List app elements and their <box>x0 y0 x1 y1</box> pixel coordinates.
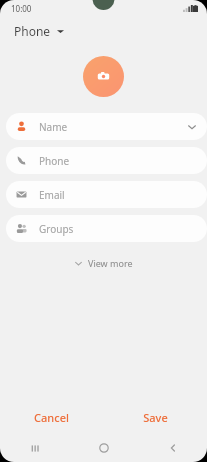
button[interactable]: Recents <box>0 434 69 462</box>
staticText: Save <box>143 410 168 425</box>
button[interactable]: View more <box>66 253 141 273</box>
button[interactable]: Save <box>103 410 207 425</box>
staticText: Groups <box>39 222 74 236</box>
staticText: 10:00 <box>11 3 32 14</box>
button[interactable]: Home <box>69 434 138 462</box>
button[interactable]: Cancel <box>0 410 103 425</box>
button[interactable]: Name <box>6 113 207 140</box>
button[interactable]: Back <box>138 434 207 462</box>
staticText: Name <box>39 120 68 134</box>
staticText: View more <box>88 257 133 269</box>
staticText: Phone <box>39 154 70 168</box>
button[interactable]: Add photo <box>83 56 124 97</box>
button[interactable]: Phone <box>12 20 66 42</box>
staticText: Email <box>39 188 65 202</box>
staticText: Cancel <box>34 410 69 425</box>
button[interactable]: Email <box>6 181 207 208</box>
button[interactable]: Phone <box>6 147 207 174</box>
staticText: Phone <box>14 23 51 39</box>
button[interactable]: Groups <box>6 215 207 242</box>
